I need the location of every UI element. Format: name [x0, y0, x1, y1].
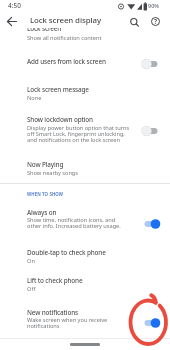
staticText: Add users from lock screen — [27, 57, 106, 66]
staticText: Lock screen display — [30, 15, 101, 26]
staticText: On — [27, 257, 35, 265]
staticText: 4:50 — [8, 1, 21, 10]
button[interactable] — [127, 15, 143, 31]
staticText: None — [27, 94, 42, 102]
staticText: Show nearby songs — [27, 169, 78, 177]
staticText: Show lockdown option — [27, 115, 93, 124]
button[interactable]: New notifications — [0, 304, 170, 336]
staticText: notifications — [27, 322, 60, 330]
staticText: off Smart Lock, fingerprint unlocking, — [27, 130, 125, 138]
button[interactable]: Show lockdown option — [0, 112, 170, 148]
button[interactable]: Always on — [0, 204, 170, 236]
staticText: and notifications on the lock screen — [27, 136, 120, 144]
staticText: Always on — [27, 208, 57, 217]
staticText: Show all notification content — [27, 34, 102, 42]
staticText: Lift to check phone — [27, 276, 83, 285]
button[interactable]: Now Playing — [0, 156, 170, 182]
button[interactable] — [142, 316, 160, 330]
button[interactable]: Double-tap to check phone — [0, 244, 170, 270]
button[interactable] — [142, 124, 160, 138]
button[interactable] — [4, 14, 20, 30]
staticText: Lock screen — [27, 28, 62, 33]
staticText: 90% — [148, 2, 159, 9]
staticText: Off — [27, 285, 36, 293]
staticText: Show time, notification icons, and — [27, 216, 116, 224]
staticText: Now Playing — [27, 160, 64, 169]
button[interactable]: Lift to check phone — [0, 272, 170, 298]
button[interactable] — [142, 217, 160, 231]
staticText: Wake screen when you receive — [27, 316, 108, 324]
button[interactable] — [70, 343, 100, 346]
staticText: New notifications — [27, 308, 78, 317]
staticText: WHEN TO SHOW — [27, 191, 64, 197]
staticText: Lock screen message — [27, 85, 89, 94]
staticText: other info. Increased battery usage. — [27, 222, 121, 230]
button[interactable]: ? — [148, 14, 164, 30]
button[interactable]: Lock screen message — [0, 80, 170, 106]
button[interactable]: Add users from lock screen — [0, 50, 170, 74]
staticText: Double-tap to check phone — [27, 248, 106, 257]
staticText: Display power button option that turns — [27, 124, 130, 132]
button[interactable]: Lock screen — [0, 28, 170, 46]
staticText: ? — [154, 17, 158, 26]
button[interactable] — [142, 57, 160, 71]
